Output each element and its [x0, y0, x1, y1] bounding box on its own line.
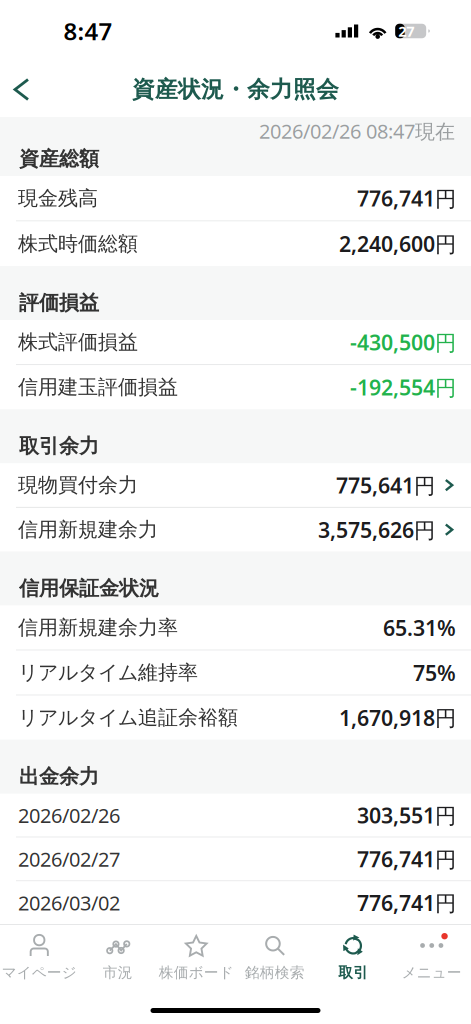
staticText: 2,240,600円 [339, 230, 456, 258]
staticText: 資産総額 [19, 146, 99, 171]
staticText: 現金残高 [18, 186, 98, 211]
button[interactable]: 戻る [0, 67, 44, 111]
staticText: 出金余力 [19, 764, 99, 789]
staticText: 776,741円 [357, 889, 456, 917]
staticText: 1,670,918円 [339, 703, 456, 732]
staticText: 3,575,626円 [318, 515, 435, 544]
button[interactable]: 銘柄検索 [235, 921, 314, 987]
staticText: 2026/03/02 [18, 889, 120, 916]
staticText: 75% [413, 658, 456, 687]
staticText: 取引余力 [19, 434, 99, 458]
button[interactable]: メニュー [392, 921, 471, 987]
staticText: 取引 [338, 963, 368, 981]
staticText: 信用新規建余力 [18, 517, 158, 542]
staticText: 8:47 [63, 15, 112, 47]
staticText: マイページ [2, 963, 77, 981]
staticText: 株式評価損益 [18, 330, 138, 354]
staticText: 303,551円 [357, 801, 456, 829]
staticText: 信用新規建余力率 [18, 615, 178, 640]
staticText: 資産状況・余力照会 [132, 76, 339, 103]
staticText: 市況 [103, 963, 133, 981]
staticText: 775,641円 [336, 471, 435, 499]
staticText: メニュー [402, 963, 462, 981]
button[interactable]: 市況 [78, 921, 157, 987]
staticText: 銘柄検索 [245, 963, 305, 981]
staticText: リアルタイム追証余裕額 [18, 705, 238, 730]
staticText: 2026/02/26 [18, 802, 120, 828]
staticText: リアルタイム維持率 [18, 660, 198, 685]
staticText: -430,500円 [350, 328, 456, 356]
staticText: -192,554円 [350, 373, 456, 401]
staticText: 株価ボード [159, 963, 234, 981]
staticText: 信用建玉評価損益 [18, 375, 178, 399]
staticText: 776,741円 [357, 845, 456, 873]
staticText: 65.31% [383, 613, 456, 642]
button[interactable]: マイページ [0, 921, 78, 987]
button[interactable]: 取引 [314, 921, 392, 987]
staticText: 2026/02/26 08:47現在 [259, 118, 455, 144]
button[interactable]: 株価ボード [157, 921, 235, 987]
staticText: 2026/02/27 [18, 846, 120, 872]
staticText: 信用保証金状況 [19, 576, 159, 601]
staticText: 現物買付余力 [18, 473, 138, 497]
staticText: 776,741円 [357, 184, 456, 212]
staticText: 27 [398, 21, 414, 41]
staticText: 株式時価総額 [18, 231, 138, 256]
staticText: 評価損益 [19, 291, 99, 315]
